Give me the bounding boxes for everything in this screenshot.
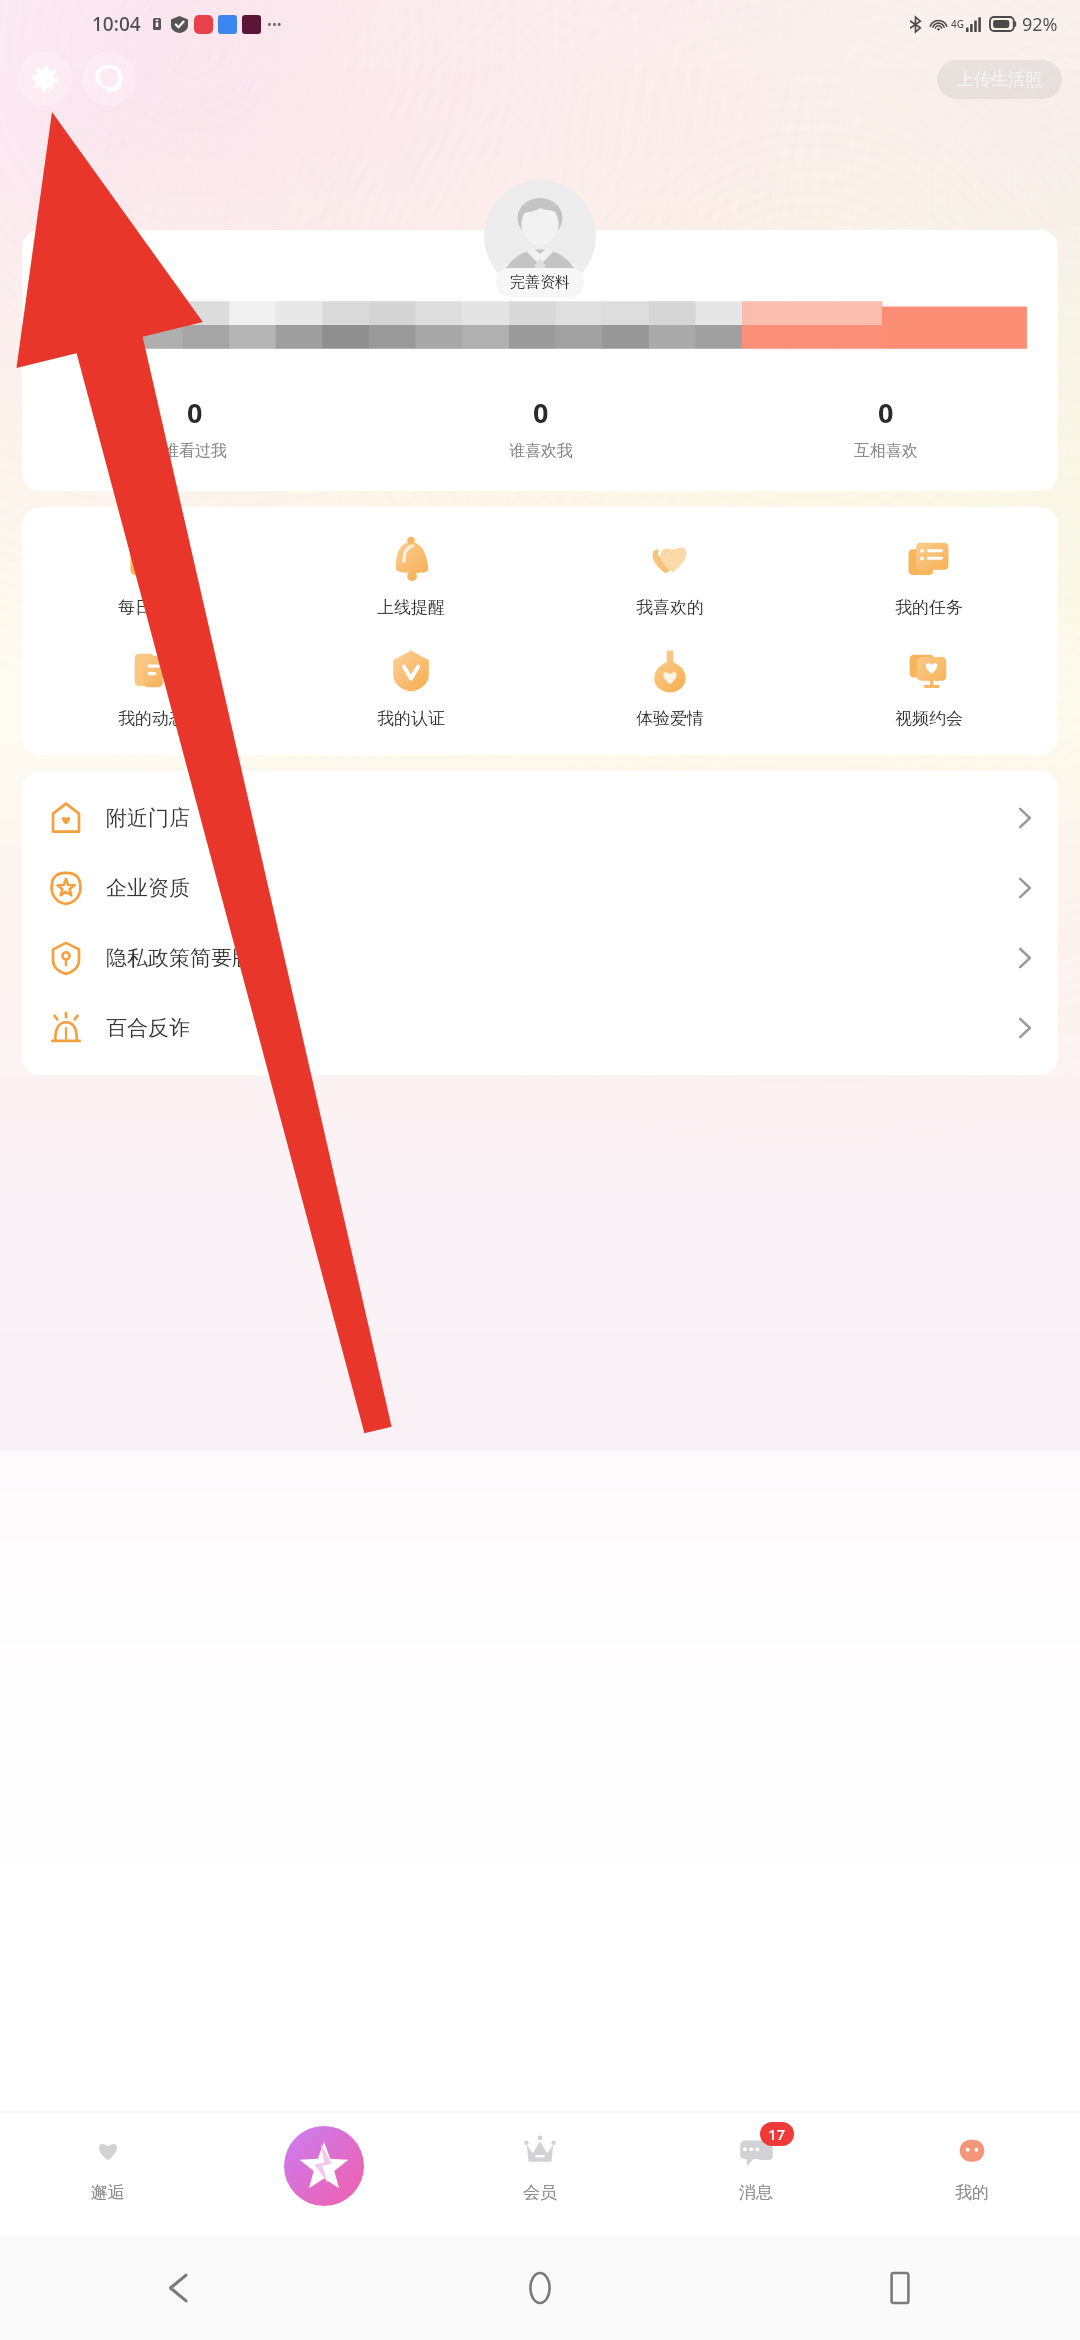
staticText: 邂逅 <box>91 2182 125 2203</box>
staticText: 消息 <box>739 2182 773 2203</box>
staticText: 上传生活照 <box>957 69 1042 90</box>
button[interactable]: 企业资质 <box>22 853 1058 923</box>
button[interactable]: 完善资料 <box>496 268 584 297</box>
staticText: 我的认证 <box>377 708 445 729</box>
button[interactable]: 设置 <box>18 52 72 106</box>
button[interactable]: 体验爱情 <box>540 644 799 729</box>
staticText: 谁看过我 <box>163 441 227 461</box>
button[interactable]: 我喜欢的 <box>540 533 799 618</box>
other: 最近任务 <box>885 2273 915 2303</box>
staticText: 百合反诈 <box>106 1015 190 1041</box>
staticText: 我的任务 <box>895 597 963 618</box>
staticText: 完善资料 <box>510 273 570 292</box>
other: 主页 <box>525 2273 555 2303</box>
button[interactable]: 0 <box>22 230 1058 491</box>
staticText: 体验爱情 <box>636 708 704 729</box>
staticText: 上线提醒 <box>377 597 445 618</box>
button[interactable]: 百合反诈 <box>22 993 1058 1063</box>
staticText: 会员 <box>523 2182 557 2203</box>
button[interactable]: 每日签到 <box>22 533 281 618</box>
button[interactable]: 隐私政策简要版 <box>22 923 1058 993</box>
staticText: 隐私政策简要版 <box>106 945 253 971</box>
button[interactable]: 上传生活照 <box>937 60 1062 99</box>
staticText: ••• <box>267 15 282 33</box>
button[interactable]: 我的动态 <box>22 644 281 729</box>
staticText: 0 <box>187 394 203 431</box>
staticText: 92% <box>1022 12 1058 37</box>
button[interactable]: 我的任务 <box>799 533 1058 618</box>
button[interactable]: 我的 <box>864 2112 1080 2236</box>
button[interactable]: 发现 <box>216 2112 432 2236</box>
button[interactable]: 会员 <box>432 2112 648 2236</box>
button[interactable]: 17 <box>648 2112 864 2236</box>
staticText: 0 <box>878 394 894 431</box>
staticText: 0 <box>533 394 549 431</box>
button[interactable]: 附近门店 <box>22 783 1058 853</box>
button[interactable]: 上线提醒 <box>281 533 540 618</box>
staticText: 我的动态 <box>118 708 186 729</box>
staticText: 企业资质 <box>106 875 190 901</box>
button[interactable]: 我的认证 <box>281 644 540 729</box>
staticText: 17 <box>768 2124 786 2144</box>
staticText: 我喜欢的 <box>636 597 704 618</box>
button[interactable]: 0 <box>713 394 1058 461</box>
staticText: 互相喜欢 <box>854 441 918 461</box>
staticText: 附近门店 <box>106 805 190 831</box>
staticText: 10:04 <box>92 11 141 37</box>
staticText: 4G <box>951 17 964 31</box>
staticText: 视频约会 <box>895 708 963 729</box>
staticText: 每日签到 <box>118 597 186 618</box>
other: 返回 <box>163 2271 197 2305</box>
button[interactable]: 0 <box>22 394 368 461</box>
button[interactable]: 邂逅 <box>0 2112 216 2236</box>
staticText: 我的 <box>955 2182 989 2203</box>
button[interactable]: 客服 <box>82 52 136 106</box>
button[interactable]: 视频约会 <box>799 644 1058 729</box>
staticText: 谁喜欢我 <box>509 441 573 461</box>
button[interactable] <box>484 180 596 292</box>
button[interactable]: 0 <box>368 394 713 461</box>
